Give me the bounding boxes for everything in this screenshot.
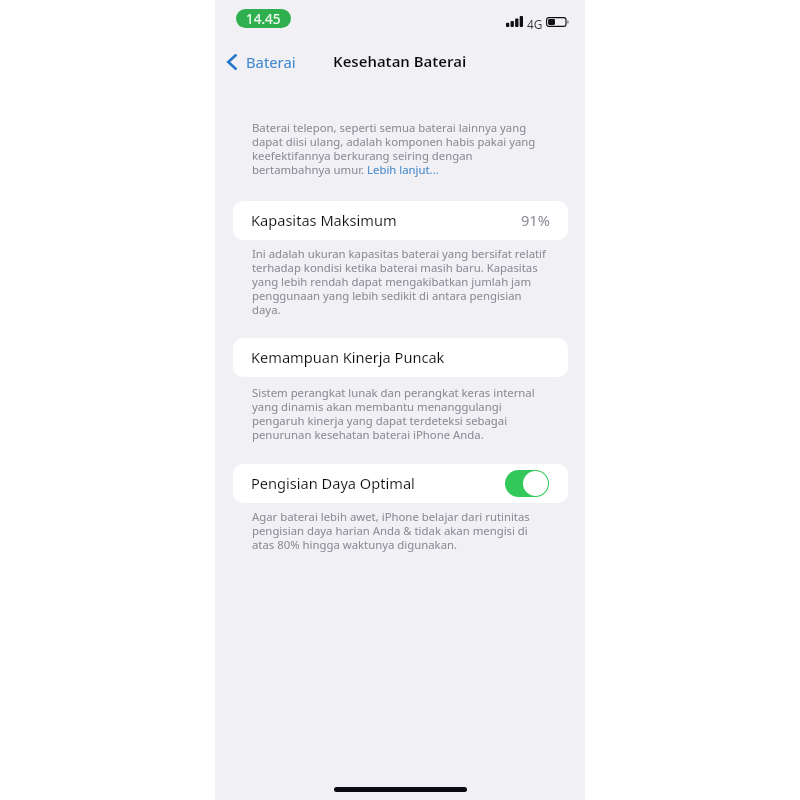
staticText: 4G xyxy=(527,16,543,32)
staticText: Kesehatan Baterai xyxy=(333,51,467,71)
button[interactable]: Pengisian Daya Optimal toggle xyxy=(505,470,549,497)
staticText: 91% xyxy=(521,210,550,230)
button[interactable]: Kemampuan Kinerja Puncak xyxy=(233,338,568,377)
staticText: Baterai telepon, seperti semua baterai l… xyxy=(252,120,552,178)
staticText: Ini adalah ukuran kapasitas baterai yang… xyxy=(252,246,552,318)
staticText: Agar baterai lebih awet, iPhone belajar … xyxy=(252,509,552,553)
staticText: Baterai xyxy=(246,52,296,72)
button[interactable]: Kapasitas Maksimum xyxy=(233,201,568,240)
staticText: Kapasitas Maksimum xyxy=(251,210,397,230)
staticText: Kemampuan Kinerja Puncak xyxy=(251,347,445,367)
button[interactable]: Back to Baterai xyxy=(217,48,304,76)
button[interactable]: Pengisian Daya Optimal xyxy=(233,464,568,503)
staticText: Pengisian Daya Optimal xyxy=(251,473,415,493)
button[interactable]: Lebih lanjut... xyxy=(367,163,440,178)
other: Battery level xyxy=(546,17,569,27)
staticText: 14.45 xyxy=(246,10,281,28)
other: Cellular signal strength xyxy=(506,16,523,27)
staticText: Sistem perangkat lunak dan perangkat ker… xyxy=(252,385,552,443)
